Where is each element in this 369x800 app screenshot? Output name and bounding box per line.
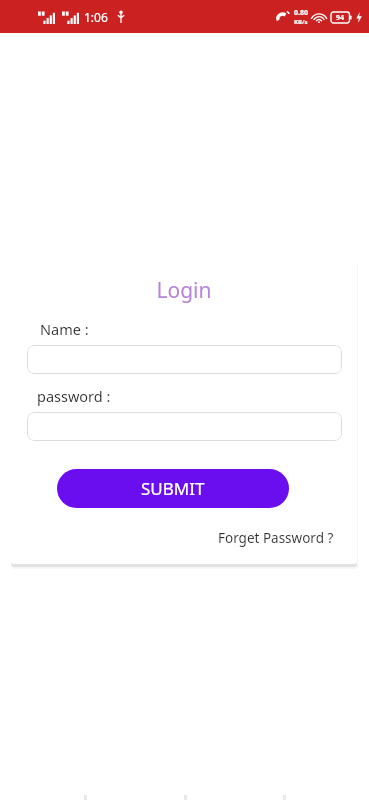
- button[interactable]: Forget Password ?: [218, 529, 334, 547]
- button[interactable]: Recents: [269, 794, 299, 800]
- staticText: KB/s: [294, 18, 308, 26]
- staticText: Name :: [40, 319, 89, 339]
- staticText: 0.80: [294, 8, 308, 18]
- button[interactable]: Home: [170, 794, 200, 800]
- button[interactable]: [27, 412, 342, 441]
- staticText: password :: [37, 386, 111, 406]
- staticText: Login: [11, 276, 357, 305]
- staticText: Forget Password ?: [218, 529, 334, 547]
- button[interactable]: [27, 345, 342, 374]
- staticText: 94: [336, 13, 345, 23]
- button[interactable]: SUBMIT: [57, 469, 289, 508]
- button[interactable]: Back: [70, 794, 100, 800]
- staticText: 1:06: [84, 9, 108, 25]
- staticText: SUBMIT: [141, 477, 205, 500]
